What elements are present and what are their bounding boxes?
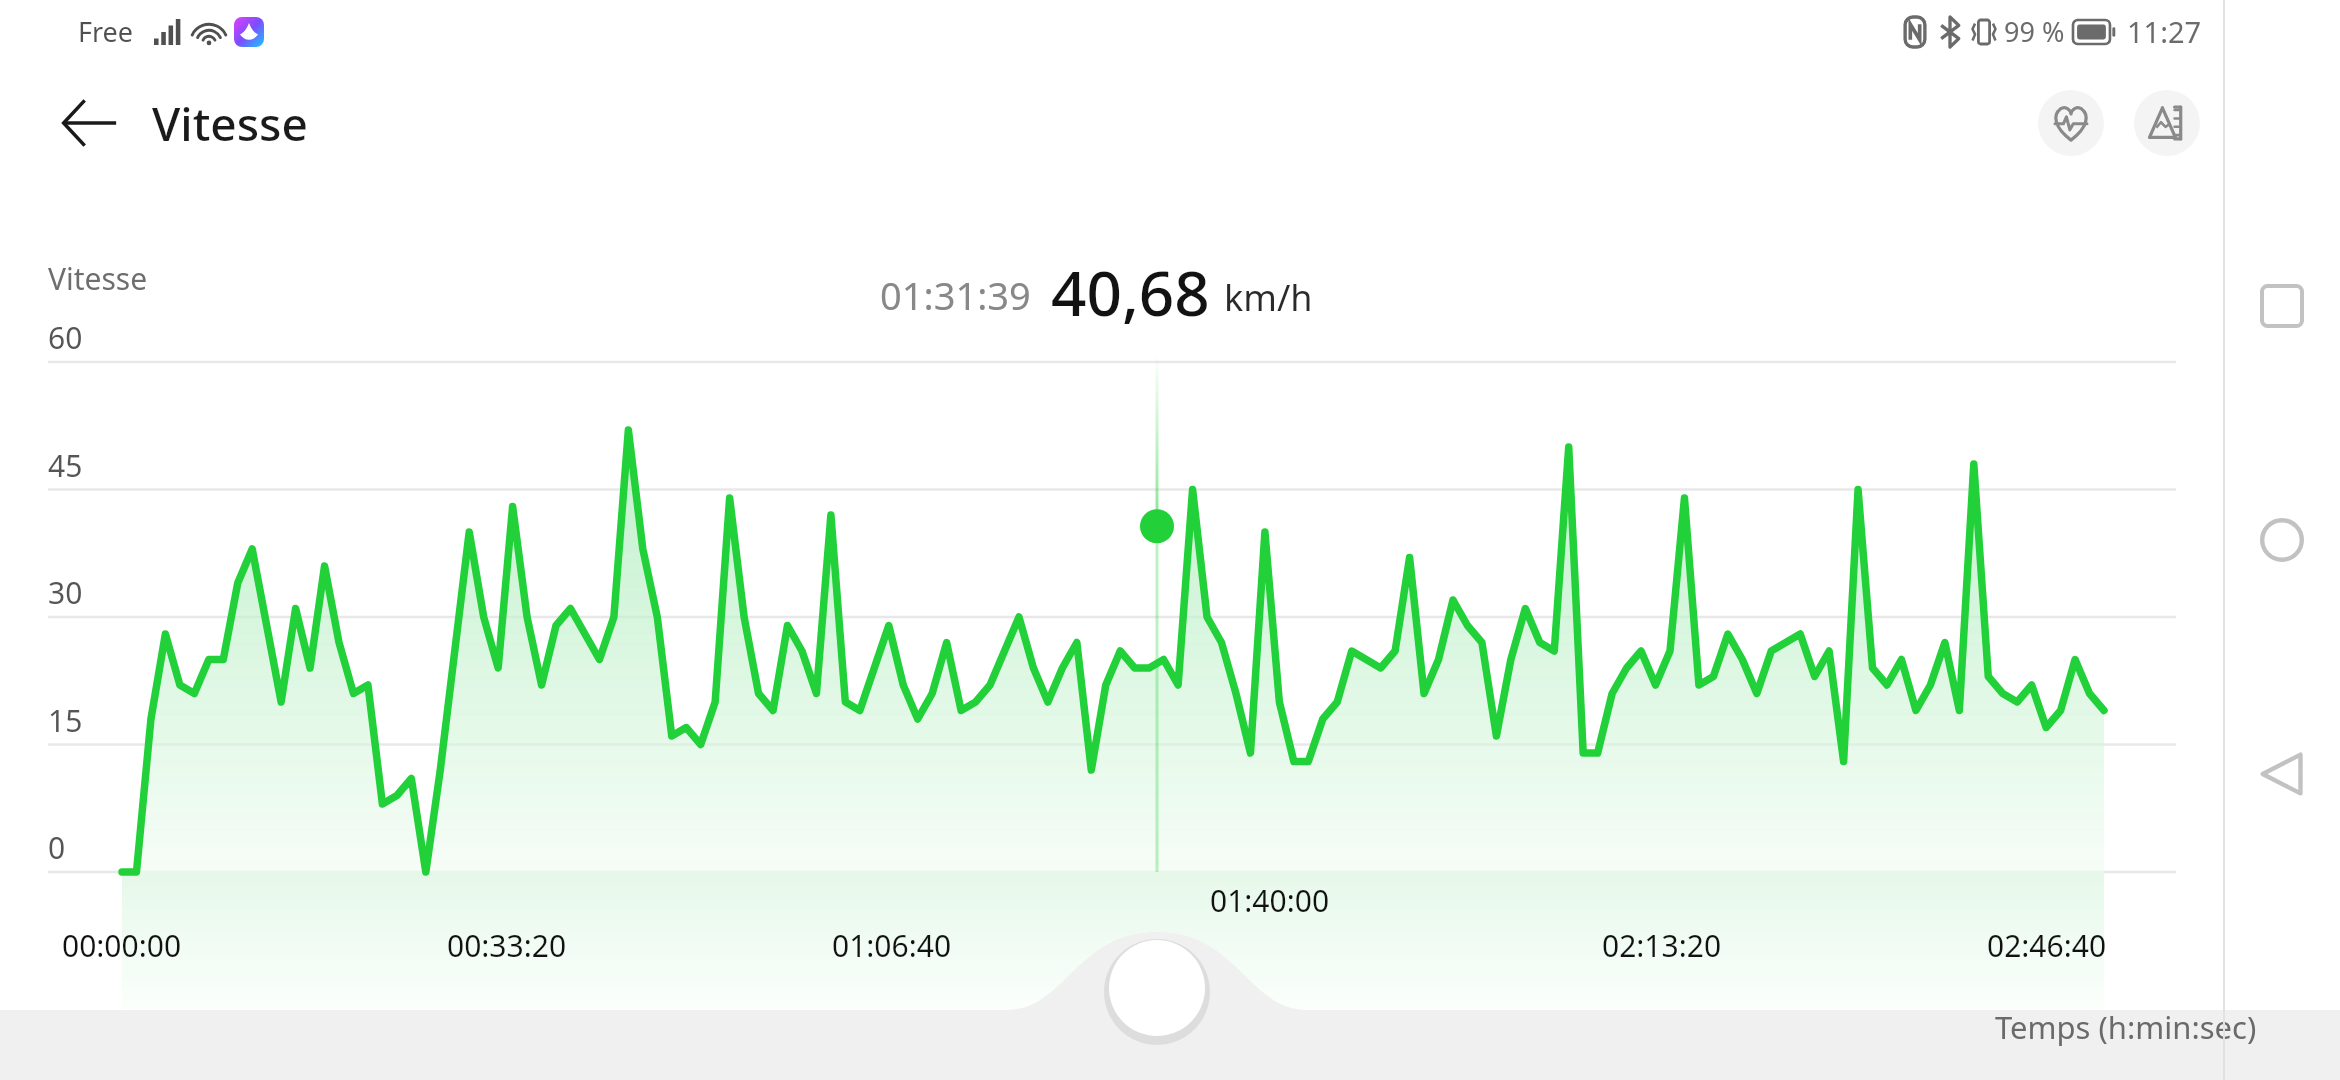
staticText: Temps (h:min:sec)	[1995, 1006, 2257, 1048]
staticText: Vitesse	[48, 258, 148, 299]
staticText: 30	[48, 572, 83, 613]
staticText: 99 %	[2004, 13, 2065, 50]
staticText: 0	[48, 827, 66, 868]
staticText: 01:06:40	[832, 925, 952, 966]
staticText: 02:13:20	[1602, 925, 1722, 966]
button[interactable]: Back	[50, 84, 308, 162]
staticText: 11:27	[2127, 12, 2202, 51]
button[interactable]: Home	[2230, 488, 2334, 592]
staticText: Free	[78, 13, 134, 50]
staticText: 01:31:39	[880, 269, 1031, 321]
staticText: 02:46:40	[1987, 925, 2107, 966]
staticText: Vitesse	[152, 92, 308, 155]
button[interactable]: Recents	[2230, 254, 2334, 358]
staticText: 45	[48, 445, 83, 486]
staticText: 00:00:00	[62, 925, 182, 966]
staticText: 40,68	[1051, 250, 1210, 330]
button[interactable]: Heart rate	[2038, 90, 2104, 156]
staticText: 15	[48, 700, 83, 741]
staticText: 01:40:00	[1210, 880, 1330, 921]
button[interactable]: Altitude	[2134, 90, 2200, 156]
staticText: 60	[48, 317, 83, 358]
button[interactable]: Back	[2230, 722, 2334, 826]
staticText: km/h	[1224, 273, 1313, 322]
other: Back	[50, 84, 128, 162]
staticText: 00:33:20	[447, 925, 567, 966]
